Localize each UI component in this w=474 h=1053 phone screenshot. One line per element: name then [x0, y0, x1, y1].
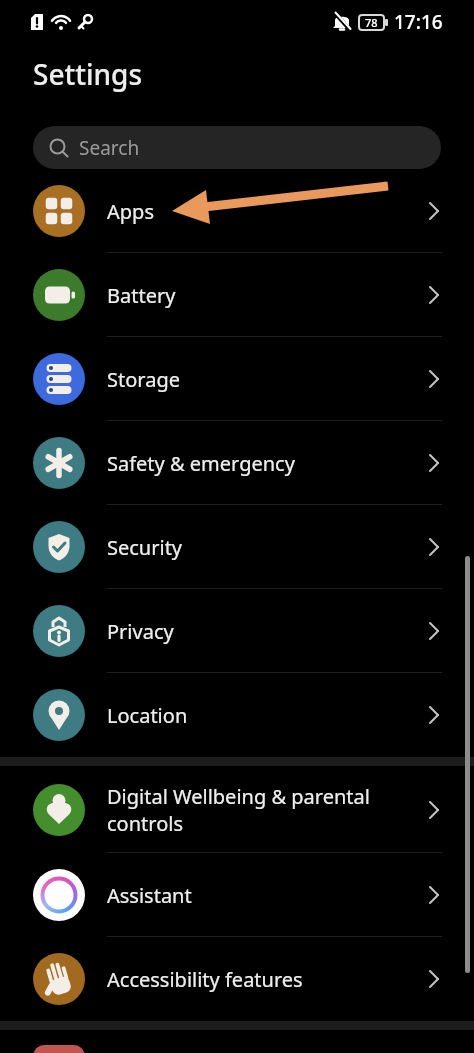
button[interactable]: Battery [0, 253, 474, 337]
button[interactable]: Security [0, 505, 474, 589]
staticText: Privacy [107, 618, 428, 645]
button[interactable]: Search [33, 126, 441, 169]
button[interactable]: Digital Wellbeing & parental controls [0, 766, 474, 853]
staticText: Search [79, 135, 140, 161]
staticText: Location [107, 702, 428, 729]
staticText: Storage [107, 366, 428, 393]
staticText: Assistant [107, 882, 428, 909]
button[interactable]: Safety & emergency [0, 421, 474, 505]
staticText: Settings [33, 55, 143, 93]
button[interactable]: Privacy [0, 589, 474, 673]
staticText: 17:16 [394, 9, 443, 35]
button[interactable]: Storage [0, 337, 474, 421]
button[interactable]: Apps [0, 169, 474, 253]
staticText: Security [107, 534, 428, 561]
staticText: Battery [107, 282, 428, 309]
staticText: Safety & emergency [107, 450, 428, 477]
staticText: 78 [365, 15, 378, 30]
button[interactable]: Accessibility features [0, 937, 474, 1021]
staticText: Digital Wellbeing & parental controls [107, 783, 428, 837]
button[interactable]: Assistant [0, 853, 474, 937]
staticText: Apps [107, 198, 428, 225]
button[interactable]: Location [0, 673, 474, 757]
staticText: Accessibility features [107, 966, 428, 993]
